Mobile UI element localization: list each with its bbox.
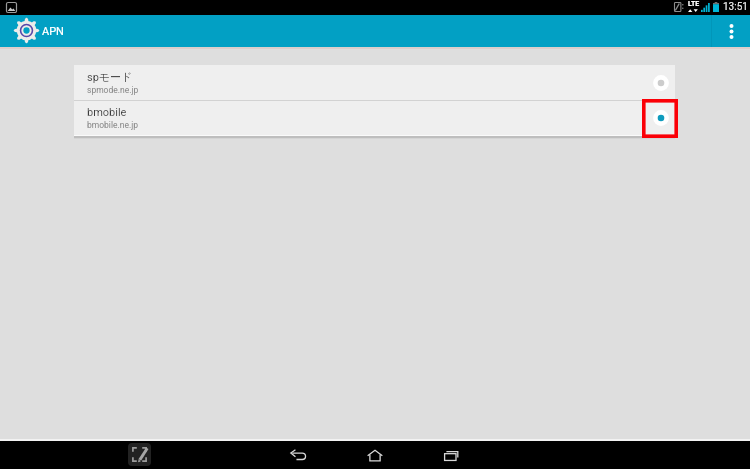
button[interactable]: spモード [74, 65, 675, 100]
button[interactable]: Screenshot edit [128, 443, 151, 466]
button[interactable]: Home [360, 441, 390, 469]
staticText: LTE [688, 0, 700, 8]
staticText: bmobile [87, 106, 127, 119]
staticText: spmode.ne.jp [87, 85, 139, 95]
staticText: 13:51 [723, 1, 748, 13]
button[interactable] [647, 101, 675, 135]
button[interactable]: More options [712, 15, 750, 47]
staticText: bmobile.ne.jp [87, 120, 138, 130]
button[interactable]: Recent apps [436, 441, 466, 469]
staticText: spモード [87, 70, 133, 84]
button[interactable]: Back [283, 441, 313, 469]
staticText: APN [42, 25, 64, 38]
button[interactable]: bmobile [74, 101, 675, 135]
button[interactable] [647, 65, 675, 100]
